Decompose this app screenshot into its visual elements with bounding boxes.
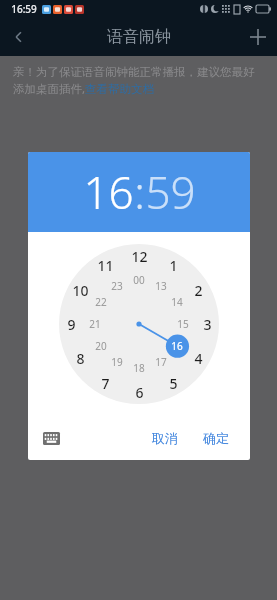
staticText: 3 <box>203 315 212 334</box>
staticText: 17 <box>155 355 167 369</box>
staticText: 5 <box>169 374 178 393</box>
staticText: 13 <box>155 279 167 293</box>
button[interactable]: 22 <box>90 291 112 313</box>
staticText: 取消 <box>152 430 178 446</box>
staticText: 10 <box>72 281 89 300</box>
button[interactable]: 4 <box>187 347 209 369</box>
button[interactable]: 5 <box>162 372 184 394</box>
button[interactable]: Switch to keyboard input <box>36 423 66 453</box>
staticText: 16:59 <box>11 2 37 16</box>
button[interactable]: 17 <box>150 351 172 373</box>
button[interactable]: 确定 <box>194 425 238 451</box>
button[interactable]: 2 <box>187 279 209 301</box>
staticText: 2 <box>194 281 203 300</box>
button[interactable]: 7 <box>94 372 116 394</box>
button[interactable]: 3 <box>196 313 218 335</box>
button[interactable]: 20 <box>90 335 112 357</box>
button[interactable]: 18 <box>128 357 150 379</box>
button[interactable]: 11 <box>94 254 116 276</box>
button[interactable]: 12 <box>128 245 150 267</box>
staticText: 7 <box>101 374 110 393</box>
staticText: 16 <box>171 339 183 353</box>
staticText: 23 <box>111 279 123 293</box>
button[interactable]: 00 <box>128 269 150 291</box>
button[interactable]: 21 <box>84 313 106 335</box>
staticText: 9 <box>67 315 76 334</box>
staticText: 14 <box>171 295 183 309</box>
staticText: 确定 <box>203 430 229 446</box>
staticText: 12 <box>131 247 148 266</box>
button[interactable]: 16 <box>166 335 188 357</box>
button[interactable]: 14 <box>166 291 188 313</box>
button[interactable]: 59 <box>145 162 196 222</box>
staticText: 22 <box>95 295 107 309</box>
button[interactable]: 8 <box>69 347 91 369</box>
button[interactable]: 19 <box>106 351 128 373</box>
staticText: 11 <box>97 256 114 275</box>
button[interactable]: 15 <box>172 313 194 335</box>
button[interactable]: Back <box>0 18 38 56</box>
button[interactable]: 23 <box>106 275 128 297</box>
button[interactable]: 9 <box>60 313 82 335</box>
staticText: 19 <box>111 355 123 369</box>
staticText: 21 <box>89 317 101 331</box>
staticText: 6 <box>135 383 144 402</box>
button[interactable]: 10 <box>69 279 91 301</box>
button[interactable]: 1 <box>162 254 184 276</box>
staticText: 4 <box>194 349 203 368</box>
staticText: 18 <box>133 361 145 375</box>
staticText: 15 <box>177 317 189 331</box>
staticText: 1 <box>169 256 178 275</box>
button[interactable]: 6 <box>128 381 150 403</box>
staticText: 语音闹钟 <box>107 27 171 47</box>
staticText: : <box>134 162 145 222</box>
button[interactable]: 16 <box>83 162 134 222</box>
button[interactable]: Add <box>239 18 277 56</box>
button[interactable]: 13 <box>150 275 172 297</box>
staticText: 8 <box>76 349 85 368</box>
staticText: 20 <box>95 339 107 353</box>
button[interactable]: 取消 <box>143 425 187 451</box>
staticText: 00 <box>133 273 145 287</box>
button[interactable]: 亲！为了保证语音闹钟能正常播报，建议您最好添加桌面插件,查看帮助文档 <box>13 65 264 96</box>
